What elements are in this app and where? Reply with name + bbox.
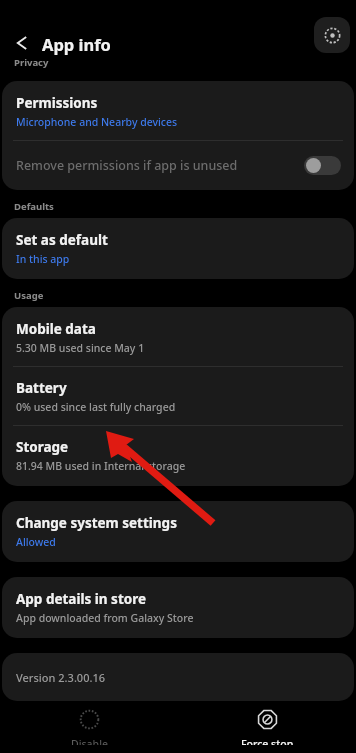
staticText: Permissions: [16, 94, 98, 112]
staticText: 5.30 MB used since May 1: [16, 341, 145, 355]
button[interactable]: Battery: [2, 367, 354, 425]
staticText: Privacy: [14, 56, 49, 69]
staticText: Usage: [14, 289, 44, 302]
staticText: Storage: [16, 438, 69, 456]
button[interactable]: Force stop: [178, 701, 356, 753]
button[interactable]: Scan: [314, 17, 350, 53]
staticText: Version 2.3.00.16: [16, 670, 106, 685]
staticText: Microphone and Nearby devices: [16, 115, 178, 129]
button[interactable]: Storage: [2, 426, 354, 486]
staticText: Battery: [16, 379, 67, 397]
button[interactable]: Set as default: [2, 218, 354, 279]
button[interactable]: App details in store: [2, 577, 354, 638]
staticText: Change system settings: [16, 514, 177, 532]
staticText: 81.94 MB used in Internal storage: [16, 459, 186, 473]
staticText: In this app: [16, 252, 70, 266]
button[interactable]: Change system settings: [2, 501, 354, 562]
staticText: Set as default: [16, 231, 108, 249]
staticText: Disable: [71, 737, 108, 745]
staticText: Allowed: [16, 535, 56, 549]
button[interactable]: Remove permissions if app is unused: [2, 141, 354, 190]
button[interactable]: Disable: [0, 701, 178, 753]
staticText: Remove permissions if app is unused: [16, 157, 238, 174]
staticText: Mobile data: [16, 320, 96, 338]
staticText: 0% used since last fully charged: [16, 400, 176, 414]
staticText: Force stop: [241, 737, 294, 745]
button[interactable]: Permissions: [2, 81, 354, 140]
button[interactable]: Back: [4, 25, 40, 61]
staticText: App details in store: [16, 590, 147, 608]
button[interactable]: Mobile data: [2, 307, 354, 366]
staticText: App downloaded from Galaxy Store: [16, 611, 194, 625]
staticText: App info: [42, 33, 111, 55]
staticText: Defaults: [14, 200, 54, 213]
